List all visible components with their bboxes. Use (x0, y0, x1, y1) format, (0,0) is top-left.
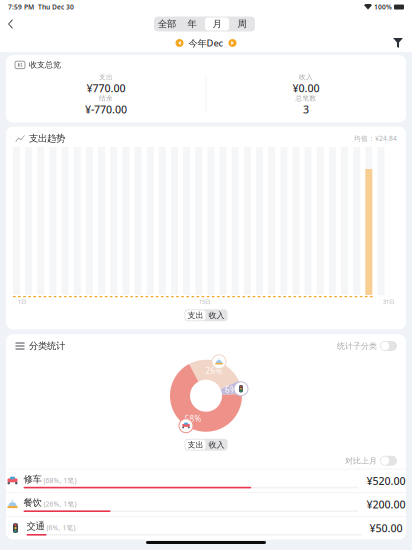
staticText: 收支总览 (29, 60, 61, 70)
button[interactable]: 支出 (185, 310, 205, 320)
button[interactable]: Next month (228, 39, 236, 47)
staticText: ¥0.00 (292, 81, 319, 95)
staticText: Thu Dec 30 (38, 3, 74, 11)
staticText: 收入 (208, 440, 224, 450)
button[interactable]: 月 (205, 17, 229, 30)
button[interactable]: 年 (180, 17, 204, 30)
button[interactable]: Compare with last month (380, 456, 397, 466)
button[interactable]: Previous month (175, 39, 183, 47)
staticText: 交通 (26, 520, 44, 532)
staticText: 支出 (187, 440, 203, 450)
staticText: 26% (205, 365, 222, 376)
staticText: 支出 (187, 310, 203, 320)
staticText: 全部 (158, 18, 176, 30)
staticText: 餐饮 (23, 497, 41, 508)
button[interactable]: 餐饮 (6, 493, 406, 516)
staticText: 结余 (99, 94, 113, 102)
staticText: 周 (237, 18, 246, 30)
staticText: 修车 (23, 473, 41, 485)
staticText: 统计子分类 (337, 341, 377, 351)
staticText: 均值：¥24.84 (354, 134, 397, 143)
button[interactable]: Back (5, 16, 16, 32)
staticText: 收入 (299, 73, 313, 81)
staticText: 对比上月 (345, 456, 377, 466)
staticText: 31日 (383, 298, 394, 305)
staticText: 月 (212, 18, 221, 30)
staticText: ¥520.00 (366, 474, 405, 488)
staticText: 3 (303, 102, 309, 117)
staticText: (26%, 1笔) (43, 499, 76, 508)
staticText: 支出 (99, 73, 113, 81)
staticText: 总笔数 (295, 94, 316, 102)
staticText: ¥50.00 (369, 521, 402, 535)
button[interactable]: Filter (393, 38, 412, 48)
staticText: 7:59 PM (8, 3, 34, 11)
staticText: 68% (184, 413, 201, 424)
staticText: 100% (374, 3, 392, 11)
staticText: ¥770.00 (86, 81, 125, 95)
staticText: 收入 (208, 310, 224, 320)
staticText: 1日 (18, 298, 26, 305)
button[interactable]: 支出 (185, 440, 205, 450)
button[interactable]: 收入 (206, 310, 226, 320)
staticText: 6% (225, 384, 237, 395)
staticText: (6%, 1笔) (46, 523, 75, 532)
staticText: ¥-770.00 (85, 102, 127, 117)
button[interactable]: 周 (230, 17, 254, 30)
staticText: 支出趋势 (29, 132, 65, 144)
staticText: 15日 (199, 298, 210, 305)
staticText: (68%, 1笔) (43, 476, 76, 485)
staticText: 分类统计 (29, 340, 65, 352)
button[interactable]: Include subcategories (380, 341, 397, 351)
button[interactable]: 全部 (155, 17, 179, 30)
button[interactable]: 交通 (6, 516, 406, 539)
staticText: 今年Dec (188, 37, 223, 49)
staticText: ¥200.00 (366, 497, 405, 512)
staticText: 年 (187, 18, 196, 30)
button[interactable]: 修车 (6, 469, 406, 492)
button[interactable]: 收入 (206, 440, 226, 450)
